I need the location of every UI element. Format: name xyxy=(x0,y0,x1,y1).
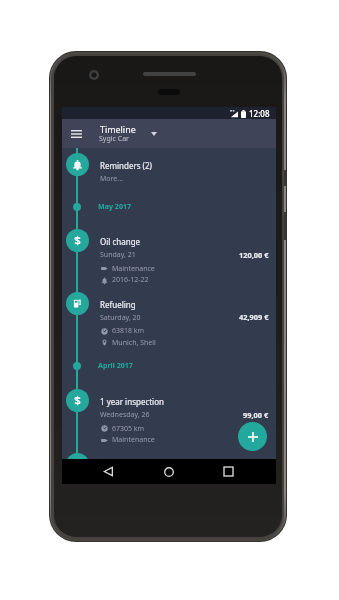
staticText: May 2017 xyxy=(98,201,132,211)
staticText: Wednesday, 26 xyxy=(100,410,150,420)
button[interactable]: Home xyxy=(158,459,179,484)
staticText: 63818 km xyxy=(112,326,145,336)
staticText: Maintenance xyxy=(112,264,155,274)
button[interactable] xyxy=(94,229,260,280)
staticText: More... xyxy=(100,174,123,184)
button[interactable]: Change vehicle xyxy=(147,119,161,148)
button[interactable]: Open navigation menu xyxy=(66,119,87,148)
staticText: 99,00 € xyxy=(243,410,269,420)
staticText: Munich, Shell xyxy=(112,338,156,348)
staticText: Saturday, 20 xyxy=(100,313,141,323)
staticText: April 2017 xyxy=(98,360,133,370)
staticText: 67305 km xyxy=(112,424,145,434)
staticText: 1 year inspection xyxy=(100,396,164,407)
staticText: Reminders (2) xyxy=(100,160,152,171)
button[interactable]: Back xyxy=(98,459,119,484)
staticText: 120,00 € xyxy=(239,250,269,260)
staticText: Oil change xyxy=(100,236,141,247)
staticText: Maintenance xyxy=(112,435,155,445)
button[interactable] xyxy=(94,291,260,342)
staticText: Sunday, 21 xyxy=(100,250,136,260)
staticText: 12:08 xyxy=(249,108,270,119)
button[interactable] xyxy=(94,152,260,176)
staticText: Timeline xyxy=(100,123,136,135)
button[interactable]: Recent apps xyxy=(218,459,239,484)
staticText: 42,909 € xyxy=(239,312,269,322)
button[interactable]: Add entry xyxy=(238,422,267,451)
button[interactable] xyxy=(94,389,260,440)
staticText: Refueling xyxy=(100,299,136,310)
staticText: 2016-12-22 xyxy=(112,275,149,285)
staticText: Sygic Car xyxy=(99,134,129,144)
